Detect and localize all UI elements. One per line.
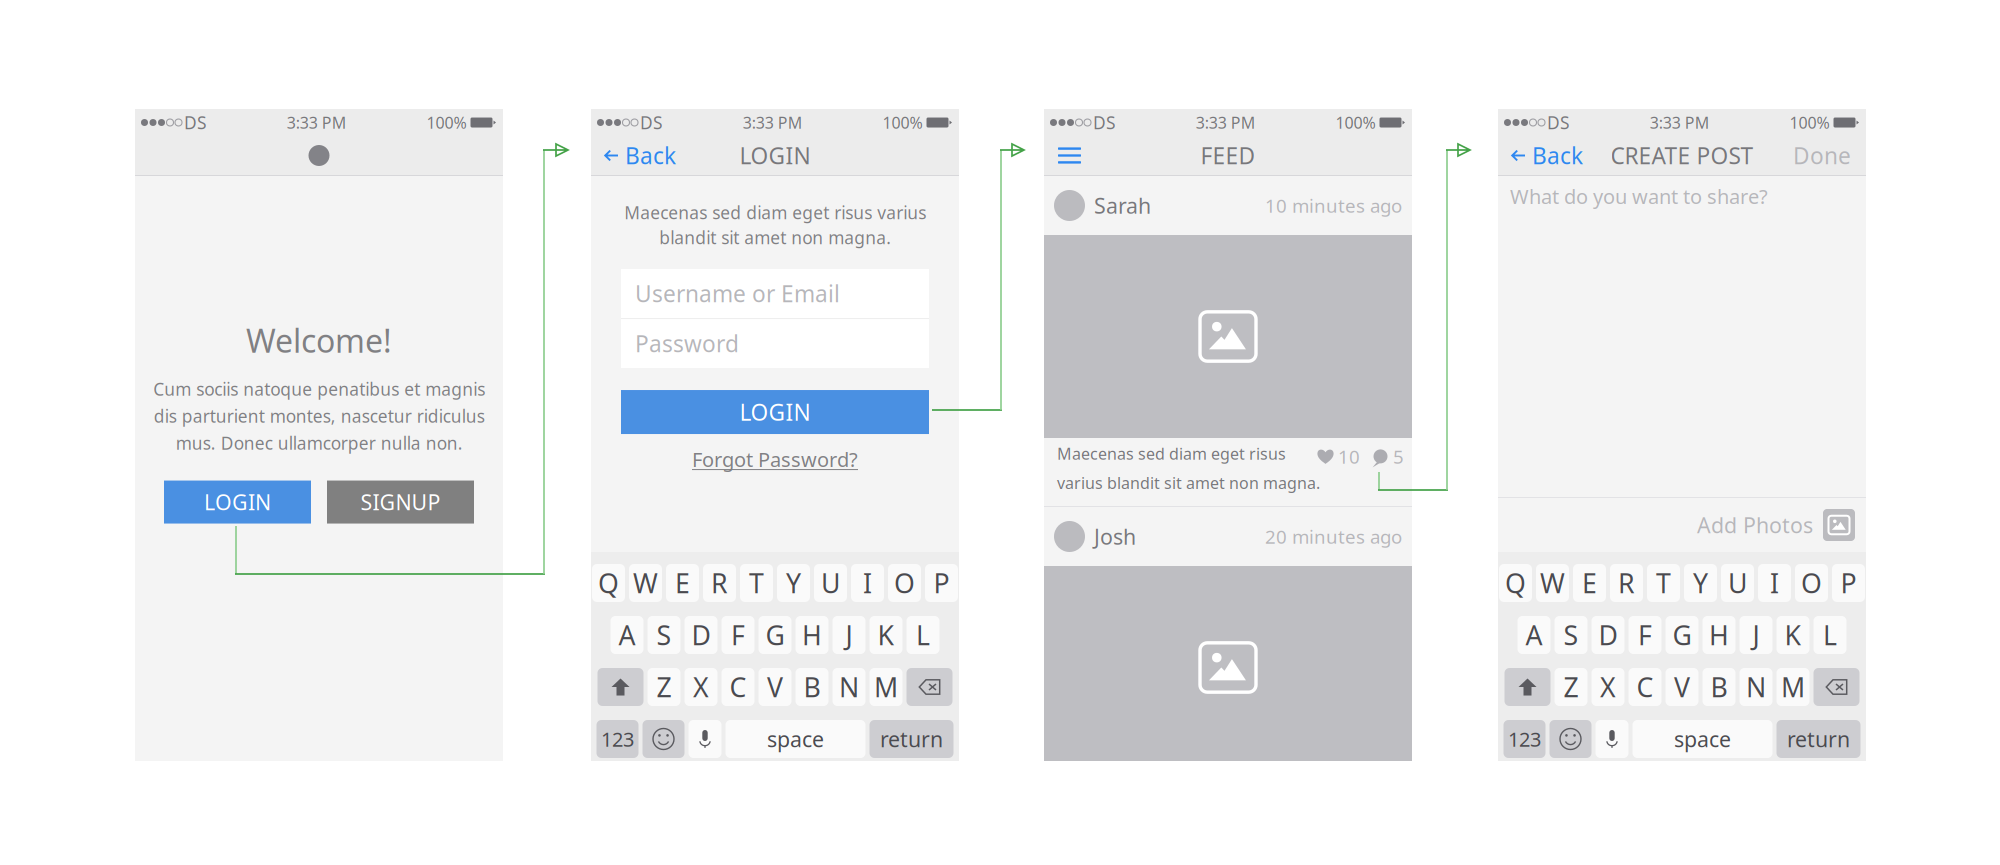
button[interactable]: R xyxy=(703,564,736,602)
button[interactable]: J xyxy=(832,616,865,654)
staticText: FEED xyxy=(1200,140,1255,170)
button[interactable]: R xyxy=(1610,564,1643,602)
button[interactable]: Dictate xyxy=(688,720,721,758)
button[interactable]: 10 xyxy=(1317,444,1360,469)
button[interactable]: D xyxy=(1591,616,1624,654)
button[interactable]: E xyxy=(1573,564,1606,602)
staticText: C xyxy=(1636,669,1653,705)
button[interactable]: Add Photos xyxy=(1686,498,1866,552)
staticText: K xyxy=(1784,617,1801,653)
staticText: W xyxy=(633,565,658,601)
button[interactable]: SIGNUP xyxy=(327,480,474,523)
button[interactable]: Delete xyxy=(906,668,952,706)
button[interactable]: Delete xyxy=(1813,668,1859,706)
staticText: Josh xyxy=(1094,522,1136,551)
button[interactable]: P xyxy=(1832,564,1865,602)
button[interactable]: H xyxy=(1702,616,1735,654)
staticText: 10 xyxy=(1338,444,1360,469)
staticText: W xyxy=(1540,565,1565,601)
button[interactable]: Done xyxy=(1780,136,1864,174)
staticText: P xyxy=(933,565,949,601)
button[interactable]: Back xyxy=(593,136,687,174)
button[interactable]: F xyxy=(721,616,754,654)
button[interactable]: Y xyxy=(1684,564,1717,602)
staticText: 20 minutes ago xyxy=(1265,524,1402,549)
button[interactable]: M xyxy=(1776,668,1809,706)
button[interactable]: Forgot Password? xyxy=(692,446,858,473)
button[interactable]: N xyxy=(1739,668,1772,706)
button[interactable]: S xyxy=(1554,616,1587,654)
staticText: Sarah xyxy=(1094,191,1151,220)
button[interactable]: LOGIN xyxy=(164,480,311,523)
button[interactable]: M xyxy=(869,668,902,706)
button[interactable]: Josh xyxy=(1044,507,1412,566)
button[interactable]: L xyxy=(906,616,939,654)
button[interactable]: I xyxy=(1758,564,1791,602)
button[interactable]: 123 xyxy=(1503,720,1545,758)
button[interactable]: Z xyxy=(647,668,680,706)
button[interactable]: U xyxy=(814,564,847,602)
staticText: L xyxy=(916,617,930,653)
button[interactable]: C xyxy=(1628,668,1661,706)
staticText: Y xyxy=(786,565,801,601)
staticText: X xyxy=(1600,669,1616,705)
button[interactable]: space xyxy=(1632,720,1772,758)
staticText: LOGIN xyxy=(739,397,810,427)
button[interactable]: Sarah xyxy=(1044,176,1412,235)
button[interactable]: V xyxy=(1665,668,1698,706)
button[interactable]: O xyxy=(1795,564,1828,602)
button[interactable]: O xyxy=(888,564,921,602)
button[interactable]: B xyxy=(1702,668,1735,706)
button[interactable]: A xyxy=(1517,616,1550,654)
button[interactable]: N xyxy=(832,668,865,706)
button[interactable]: return xyxy=(869,720,953,758)
button[interactable]: S xyxy=(647,616,680,654)
button[interactable]: L xyxy=(1813,616,1846,654)
button[interactable]: Dictate xyxy=(1595,720,1628,758)
staticText: 123 xyxy=(1508,726,1541,752)
button[interactable]: F xyxy=(1628,616,1661,654)
button[interactable]: Emoji xyxy=(1549,720,1591,758)
button[interactable]: 5 xyxy=(1372,444,1404,469)
button[interactable]: Q xyxy=(1499,564,1532,602)
button[interactable]: K xyxy=(869,616,902,654)
button[interactable]: Back xyxy=(1500,136,1594,174)
button[interactable]: B xyxy=(795,668,828,706)
staticText: P xyxy=(1840,565,1856,601)
button[interactable]: V xyxy=(758,668,791,706)
button[interactable]: Q xyxy=(592,564,625,602)
button[interactable]: X xyxy=(684,668,717,706)
button[interactable]: W xyxy=(1536,564,1569,602)
button[interactable]: return xyxy=(1776,720,1860,758)
button[interactable]: Shift xyxy=(597,668,643,706)
button[interactable]: U xyxy=(1721,564,1754,602)
button[interactable]: T xyxy=(1647,564,1680,602)
button[interactable]: Menu xyxy=(1046,136,1093,174)
button[interactable]: 123 xyxy=(596,720,638,758)
button[interactable]: H xyxy=(795,616,828,654)
button[interactable]: Emoji xyxy=(642,720,684,758)
button[interactable]: Y xyxy=(777,564,810,602)
staticText: 123 xyxy=(601,726,634,752)
button[interactable]: J xyxy=(1739,616,1772,654)
button[interactable]: space xyxy=(725,720,865,758)
button[interactable]: D xyxy=(684,616,717,654)
staticText: J xyxy=(1752,617,1759,653)
staticText: Back xyxy=(1532,140,1583,170)
button[interactable]: P xyxy=(925,564,958,602)
button[interactable]: W xyxy=(629,564,662,602)
button[interactable]: G xyxy=(1665,616,1698,654)
button[interactable]: X xyxy=(1591,668,1624,706)
button[interactable]: T xyxy=(740,564,773,602)
button[interactable]: C xyxy=(721,668,754,706)
button[interactable]: Z xyxy=(1554,668,1587,706)
button[interactable]: I xyxy=(851,564,884,602)
button[interactable]: Shift xyxy=(1504,668,1550,706)
button[interactable]: A xyxy=(610,616,643,654)
button[interactable]: K xyxy=(1776,616,1809,654)
button[interactable]: G xyxy=(758,616,791,654)
staticText: Q xyxy=(598,565,619,601)
button[interactable]: E xyxy=(666,564,699,602)
staticText: A xyxy=(1525,617,1542,653)
button[interactable]: LOGIN xyxy=(621,390,929,434)
